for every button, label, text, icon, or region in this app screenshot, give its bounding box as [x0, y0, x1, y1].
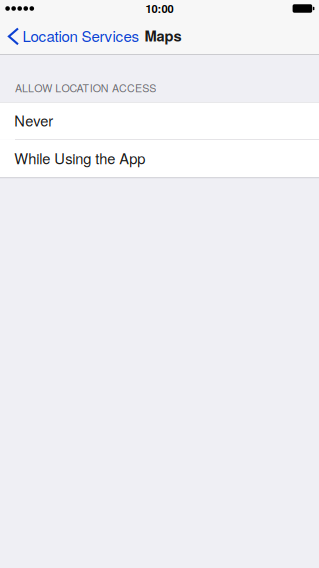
staticText: Location Services: [23, 25, 140, 46]
staticText: 10:00: [145, 0, 173, 16]
staticText: Maps: [144, 25, 181, 46]
button[interactable]: Back to Location Services: [0, 17, 148, 54]
button[interactable]: Never: [0, 102, 319, 140]
staticText: Never: [14, 110, 53, 131]
button[interactable]: While Using the App: [0, 140, 319, 177]
staticText: While Using the App: [14, 147, 145, 168]
staticText: ALLOW LOCATION ACCESS: [15, 80, 156, 95]
